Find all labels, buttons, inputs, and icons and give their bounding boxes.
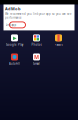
staticText: ▶	[12, 35, 16, 41]
button[interactable]: M	[25, 53, 47, 65]
staticText: Link app	[5, 23, 16, 27]
staticText: M	[34, 53, 39, 60]
button[interactable]: ▶	[3, 34, 25, 46]
staticText: Gmail	[33, 62, 40, 65]
staticText: Passes	[54, 43, 62, 46]
staticText: AdMob	[5, 6, 21, 11]
button[interactable]: Passes	[47, 34, 69, 46]
staticText: AutoFill	[9, 62, 20, 65]
staticText: Photos	[31, 43, 41, 46]
staticText: Google Play	[6, 43, 23, 46]
button[interactable]: Photos	[25, 34, 47, 46]
staticText: We recommend you link your app so you ca…	[5, 12, 72, 19]
button[interactable]: AutoFill	[3, 53, 25, 65]
